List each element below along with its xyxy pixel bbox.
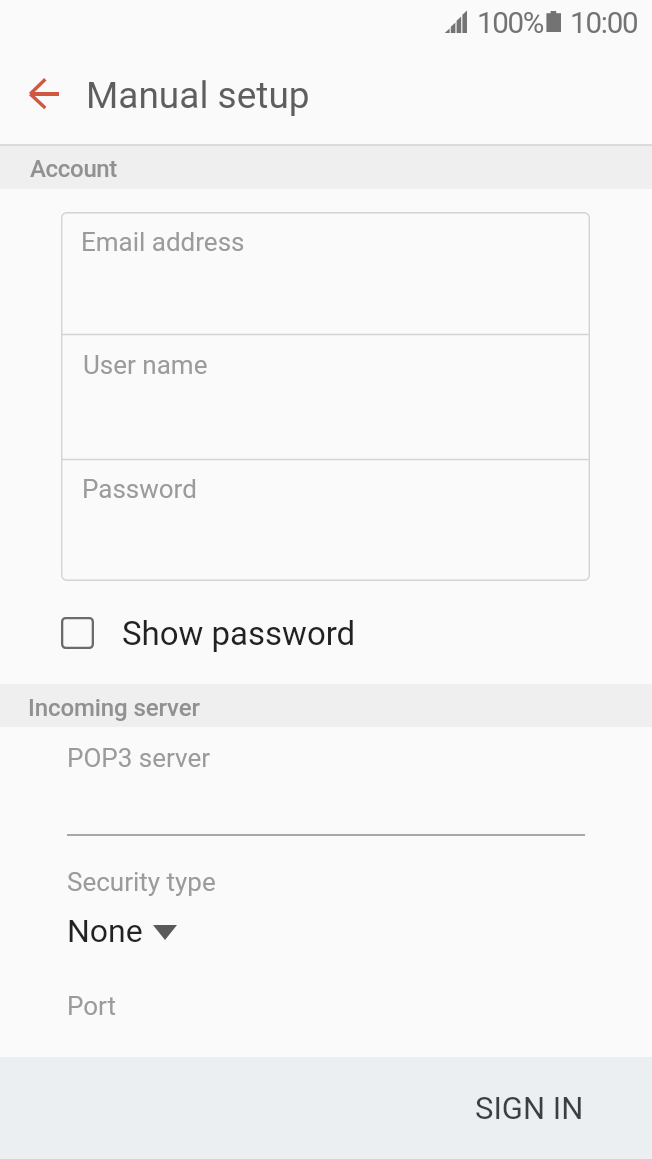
staticText: Port <box>67 991 117 1021</box>
staticText: User name <box>83 350 208 380</box>
button[interactable]: Password <box>61 460 589 579</box>
button[interactable]: Show password <box>0 606 652 660</box>
staticText: Incoming server <box>28 694 200 722</box>
button[interactable]: Email address <box>61 213 589 334</box>
staticText: 100% <box>477 6 544 41</box>
button[interactable]: SIGN IN <box>457 1074 602 1142</box>
button[interactable]: POP3 server <box>0 727 652 842</box>
staticText: Password <box>82 474 197 504</box>
button[interactable]: User name <box>61 335 589 459</box>
staticText: None <box>67 912 143 950</box>
button[interactable]: Security type <box>0 860 652 960</box>
other: Battery full <box>546 11 562 33</box>
staticText: Manual setup <box>86 74 310 117</box>
other: Signal strength <box>445 10 468 33</box>
button[interactable]: Navigate up <box>20 70 68 118</box>
staticText: Email address <box>81 227 245 257</box>
staticText: Account <box>30 155 118 183</box>
staticText: Security type <box>67 867 216 897</box>
button[interactable]: Port <box>0 975 652 1057</box>
staticText: POP3 server <box>67 743 211 773</box>
staticText: SIGN IN <box>475 1090 584 1126</box>
staticText: 10:00 <box>570 6 638 41</box>
staticText: Show password <box>122 614 356 653</box>
